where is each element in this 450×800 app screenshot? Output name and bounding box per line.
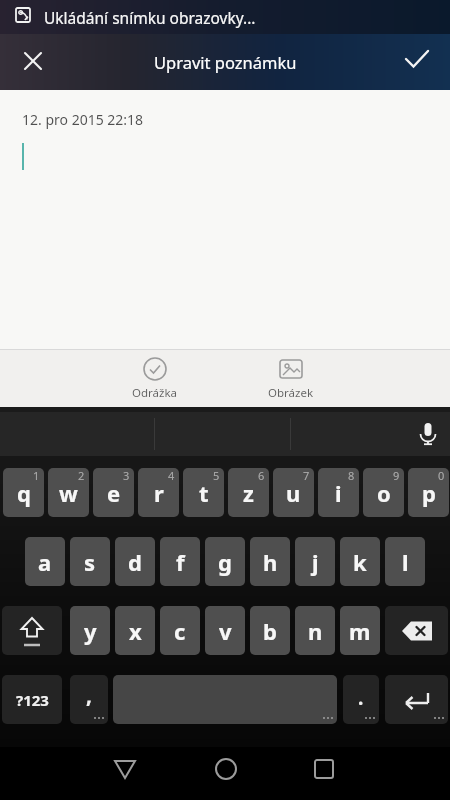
button[interactable]: h	[250, 537, 290, 586]
staticText: Obrázek	[268, 385, 314, 401]
button[interactable]: i	[318, 468, 359, 517]
staticText: 8	[348, 468, 355, 483]
staticText: q	[17, 478, 31, 508]
staticText: 9	[393, 468, 400, 483]
button[interactable]: v	[205, 606, 245, 655]
button[interactable]: ,	[70, 675, 108, 724]
button[interactable]: s	[70, 537, 110, 586]
staticText: 1	[33, 468, 40, 483]
button[interactable]: Odrážka	[120, 356, 190, 401]
staticText: f	[176, 547, 185, 577]
button[interactable]: u	[273, 468, 314, 517]
button[interactable]	[395, 38, 439, 80]
staticText: e	[107, 478, 121, 508]
button[interactable]: o	[363, 468, 404, 517]
staticText: Ukládání snímku obrazovky...	[44, 7, 256, 28]
button[interactable]	[2, 606, 62, 655]
button[interactable]: j	[295, 537, 335, 586]
staticText: ?123	[16, 690, 49, 710]
staticText: w	[59, 478, 78, 508]
button[interactable]: g	[205, 537, 245, 586]
staticText: m	[349, 616, 371, 646]
staticText: y	[84, 616, 97, 646]
button[interactable]: x	[115, 606, 155, 655]
staticText: i	[335, 478, 342, 508]
staticText: c	[174, 616, 186, 646]
staticText: v	[219, 616, 232, 646]
button[interactable]: l	[385, 537, 425, 586]
staticText: Odrážka	[132, 385, 178, 401]
staticText: ,	[86, 681, 92, 710]
button[interactable]: c	[160, 606, 200, 655]
staticText: l	[402, 547, 409, 577]
button[interactable]	[12, 40, 54, 82]
staticText: z	[243, 478, 254, 508]
staticText: 5	[213, 468, 220, 483]
button[interactable]: r	[138, 468, 179, 517]
button[interactable]	[408, 414, 448, 454]
button[interactable]: d	[115, 537, 155, 586]
staticText: 7	[303, 468, 310, 483]
staticText: 6	[258, 468, 265, 483]
button[interactable]: a	[25, 537, 65, 586]
staticText: t	[199, 478, 209, 508]
button[interactable]: t	[183, 468, 224, 517]
staticText: s	[84, 547, 96, 577]
button[interactable]: k	[340, 537, 380, 586]
staticText: u	[286, 478, 301, 508]
staticText: .	[358, 685, 364, 711]
button[interactable]: q	[3, 468, 44, 517]
button[interactable]: ?123	[2, 675, 62, 724]
button[interactable]	[204, 747, 248, 791]
staticText: x	[129, 616, 142, 646]
button[interactable]: f	[160, 537, 200, 586]
staticText: b	[263, 616, 277, 646]
button[interactable]: e	[93, 468, 134, 517]
button[interactable]: n	[295, 606, 335, 655]
staticText: n	[308, 616, 323, 646]
staticText: o	[377, 478, 391, 508]
staticText: 0	[438, 468, 445, 483]
button[interactable]	[385, 606, 448, 655]
button[interactable]	[103, 747, 147, 791]
button[interactable]	[302, 747, 346, 791]
button[interactable]: z	[228, 468, 269, 517]
staticText: d	[128, 547, 142, 577]
staticText: 12. pro 2015 22:18	[22, 110, 144, 129]
button[interactable]	[385, 675, 448, 724]
button[interactable]	[113, 675, 337, 724]
staticText: 3	[123, 468, 130, 483]
staticText: k	[353, 547, 367, 577]
staticText: r	[154, 478, 164, 508]
staticText: Upravit poznámku	[154, 51, 297, 73]
staticText: h	[263, 547, 278, 577]
button[interactable]: b	[250, 606, 290, 655]
staticText: j	[312, 547, 319, 577]
staticText: a	[38, 547, 52, 577]
button[interactable]: Obrázek	[256, 356, 326, 401]
button[interactable]: .	[343, 675, 379, 724]
button[interactable]: w	[48, 468, 89, 517]
button[interactable]: m	[340, 606, 380, 655]
staticText: 4	[168, 468, 175, 483]
staticText: g	[218, 547, 232, 577]
button[interactable]: p	[408, 468, 449, 517]
button[interactable]: y	[70, 606, 110, 655]
staticText: p	[422, 478, 436, 508]
staticText: 2	[78, 468, 85, 483]
